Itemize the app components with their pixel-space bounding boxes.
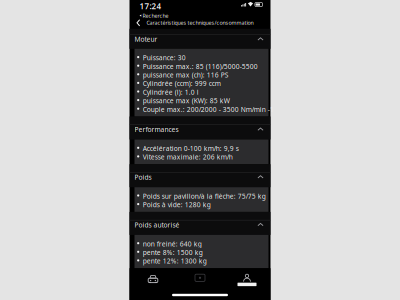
- staticText: non freiné: 640 kg: [143, 239, 202, 248]
- staticText: Poids à vide: 1280 kg: [143, 200, 211, 209]
- staticText: Puissance: 30: [143, 53, 186, 62]
- button[interactable]: Cartes: [176, 274, 223, 289]
- staticText: Accélération 0-100 km/h: 9,9 s: [143, 144, 239, 153]
- staticText: Cylindrée (ccm): 999 ccm: [143, 79, 221, 88]
- staticText: puissance max (ch): 116 PS: [143, 70, 229, 79]
- staticText: Performances: [134, 125, 178, 134]
- staticText: Couple max.: 200/2000 - 3500 Nm/min -1: [143, 105, 274, 114]
- button[interactable]: Performances: [129, 116, 270, 139]
- staticText: Cylindrée (l): 1.0 l: [143, 88, 199, 97]
- staticText: pente 12%: 1300 kg: [143, 257, 207, 265]
- staticText: Caractéristiques techniques/consommation: [146, 19, 253, 26]
- button[interactable]: Moteur: [129, 29, 270, 49]
- staticText: pente 8%: 1500 kg: [143, 248, 203, 257]
- staticText: Moteur: [134, 35, 157, 44]
- staticText: 17:24: [139, 1, 161, 11]
- staticText: Recherche: [142, 12, 168, 19]
- button[interactable]: Caractéristiques techniques/consommation: [129, 17, 270, 29]
- staticText: Poids autorisé: [134, 220, 179, 229]
- button[interactable]: Profil: [223, 274, 270, 289]
- button[interactable]: Poids autorisé: [129, 212, 270, 235]
- staticText: Vitesse maximale: 206 km/h: [143, 153, 233, 161]
- staticText: Puissance max.: 85 (116)/5000-5500: [143, 62, 258, 71]
- button[interactable]: Poids: [129, 164, 270, 187]
- staticText: puissance max (KW): 85 kW: [143, 96, 230, 105]
- staticText: Poids sur pavillon/à la flèche: 75/75 kg: [143, 192, 266, 201]
- button[interactable]: Véhicule: [129, 274, 176, 289]
- staticText: Poids: [134, 173, 151, 182]
